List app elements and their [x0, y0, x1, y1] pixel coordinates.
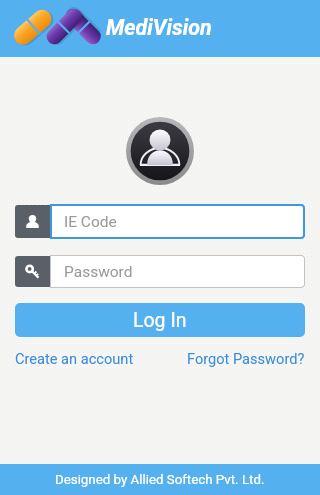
- button[interactable]: Create an account: [15, 350, 134, 367]
- staticText: Password: [64, 263, 133, 281]
- staticText: Create an account: [15, 350, 134, 367]
- staticText: Designed by Allied Softech Pvt. Ltd.: [55, 472, 265, 488]
- button[interactable]: User: [15, 204, 305, 239]
- button[interactable]: Password: [15, 255, 305, 288]
- other: User: [15, 205, 50, 238]
- staticText: IE Code: [64, 213, 117, 231]
- button[interactable]: Forgot Password?: [187, 350, 305, 367]
- button[interactable]: Log In: [15, 303, 305, 337]
- staticText: Log In: [133, 309, 187, 332]
- other: Password: [15, 256, 50, 287]
- staticText: Forgot Password?: [187, 350, 305, 367]
- staticText: MediVision: [106, 15, 212, 40]
